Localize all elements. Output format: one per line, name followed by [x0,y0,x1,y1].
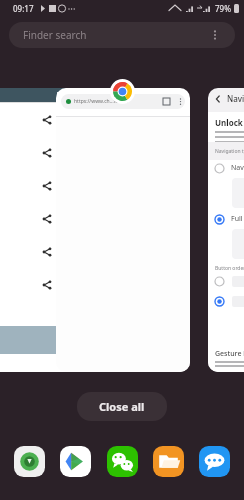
button[interactable] [0,136,90,169]
button[interactable] [0,268,90,301]
button[interactable]: Messages [199,446,230,477]
button[interactable]: https://www.ch…forum [61,94,185,109]
button[interactable] [0,169,90,202]
staticText: https://www.ch…forum [74,98,180,105]
button[interactable] [0,202,90,235]
staticText: Gesture hi [215,349,244,359]
button[interactable]: Back [214,95,222,103]
button[interactable] [0,103,90,136]
staticText: 09:17 [13,3,34,14]
button[interactable]: Navig [208,160,244,176]
button[interactable] [0,235,90,268]
staticText: Button order [215,265,244,272]
button[interactable]: Close all [77,392,167,421]
staticText: Close all [99,399,145,414]
staticText: Navigat [227,93,244,104]
button[interactable]: WeChat [107,446,138,477]
button[interactable]: Play Store [60,446,91,477]
button[interactable]: Back [208,88,244,372]
button[interactable] [208,276,244,287]
button[interactable]: My Files [153,446,184,477]
button[interactable]: Tabs [163,98,170,105]
staticText: Navigation ty [215,148,244,155]
staticText: Full s [231,214,244,224]
button[interactable] [208,296,244,307]
button[interactable]: https://www.ch…forum [56,88,190,372]
button[interactable]: Chrome [110,79,135,104]
button[interactable]: More options [209,29,221,41]
staticText: Navig [231,163,244,173]
button[interactable]: Full s [208,211,244,227]
button[interactable]: Finder search [9,22,235,48]
staticText: Unlock wit [215,117,244,128]
button[interactable]: Menu [177,98,184,105]
staticText: Finder search [23,28,209,42]
staticText: 79% [215,3,231,14]
button[interactable]: Downloads [14,446,45,477]
button[interactable] [0,88,90,372]
